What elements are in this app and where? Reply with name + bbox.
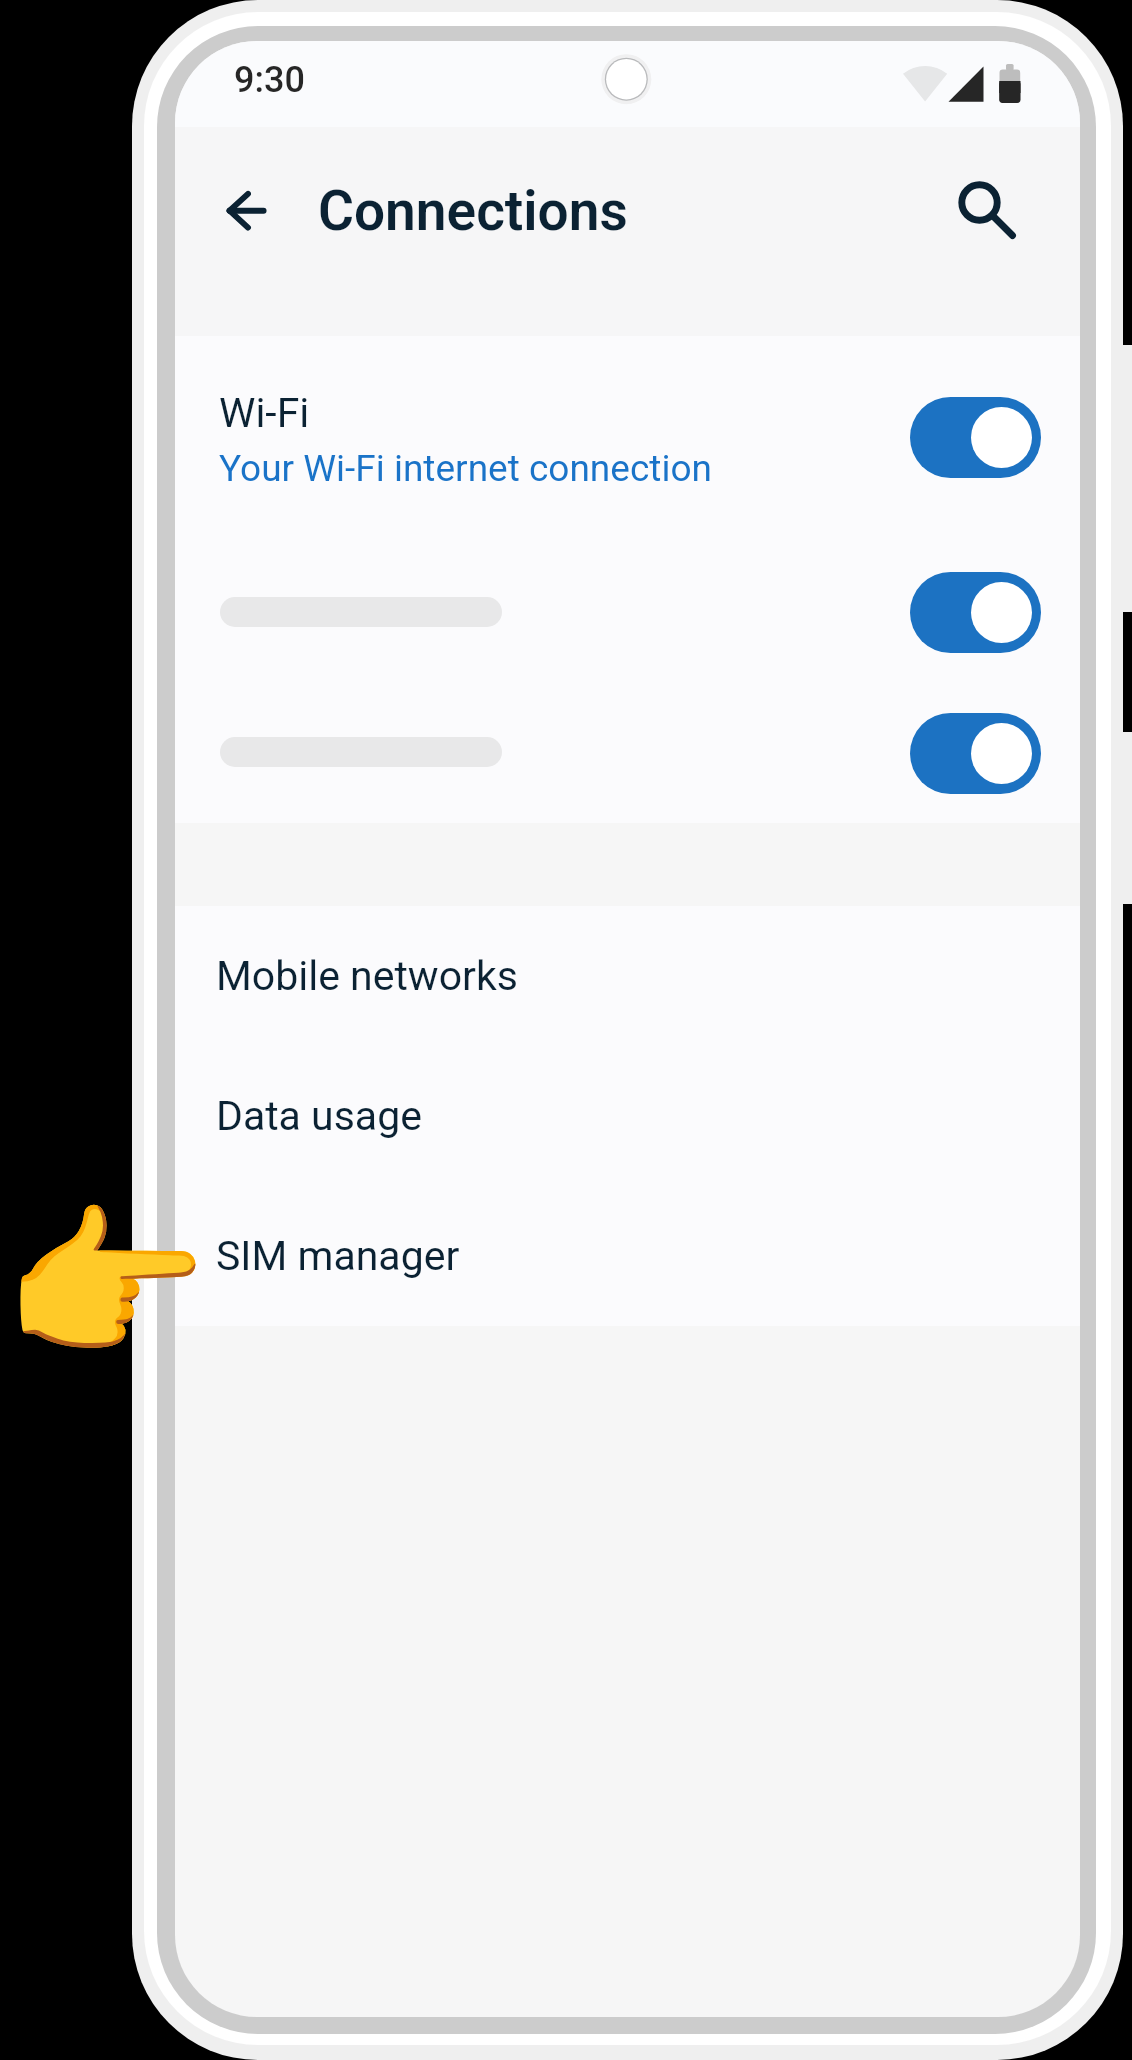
staticText: 👉: [2, 1188, 209, 1383]
button[interactable]: Mobile networks: [175, 906, 1080, 1046]
button[interactable]: Data usage: [175, 1046, 1080, 1186]
button[interactable]: Wi-Fi on: [910, 397, 1041, 478]
button[interactable]: Search: [937, 161, 1021, 245]
staticText: 9:30: [234, 59, 305, 101]
staticText: Wi-Fi: [219, 389, 310, 437]
staticText: SIM manager: [216, 1232, 460, 1280]
button[interactable]: Setting on: [910, 572, 1041, 653]
button[interactable]: Wi-Fi: [175, 336, 1080, 541]
staticText: Data usage: [216, 1092, 422, 1140]
button[interactable]: Setting on: [910, 713, 1041, 794]
button[interactable]: Setting on: [175, 683, 1080, 823]
staticText: Connections: [318, 179, 628, 243]
staticText: Mobile networks: [216, 952, 518, 1000]
button[interactable]: Setting on: [175, 541, 1080, 683]
button[interactable]: SIM manager: [175, 1186, 1080, 1326]
button[interactable]: Back: [204, 168, 288, 252]
staticText: Your Wi-Fi internet connection: [219, 447, 712, 490]
